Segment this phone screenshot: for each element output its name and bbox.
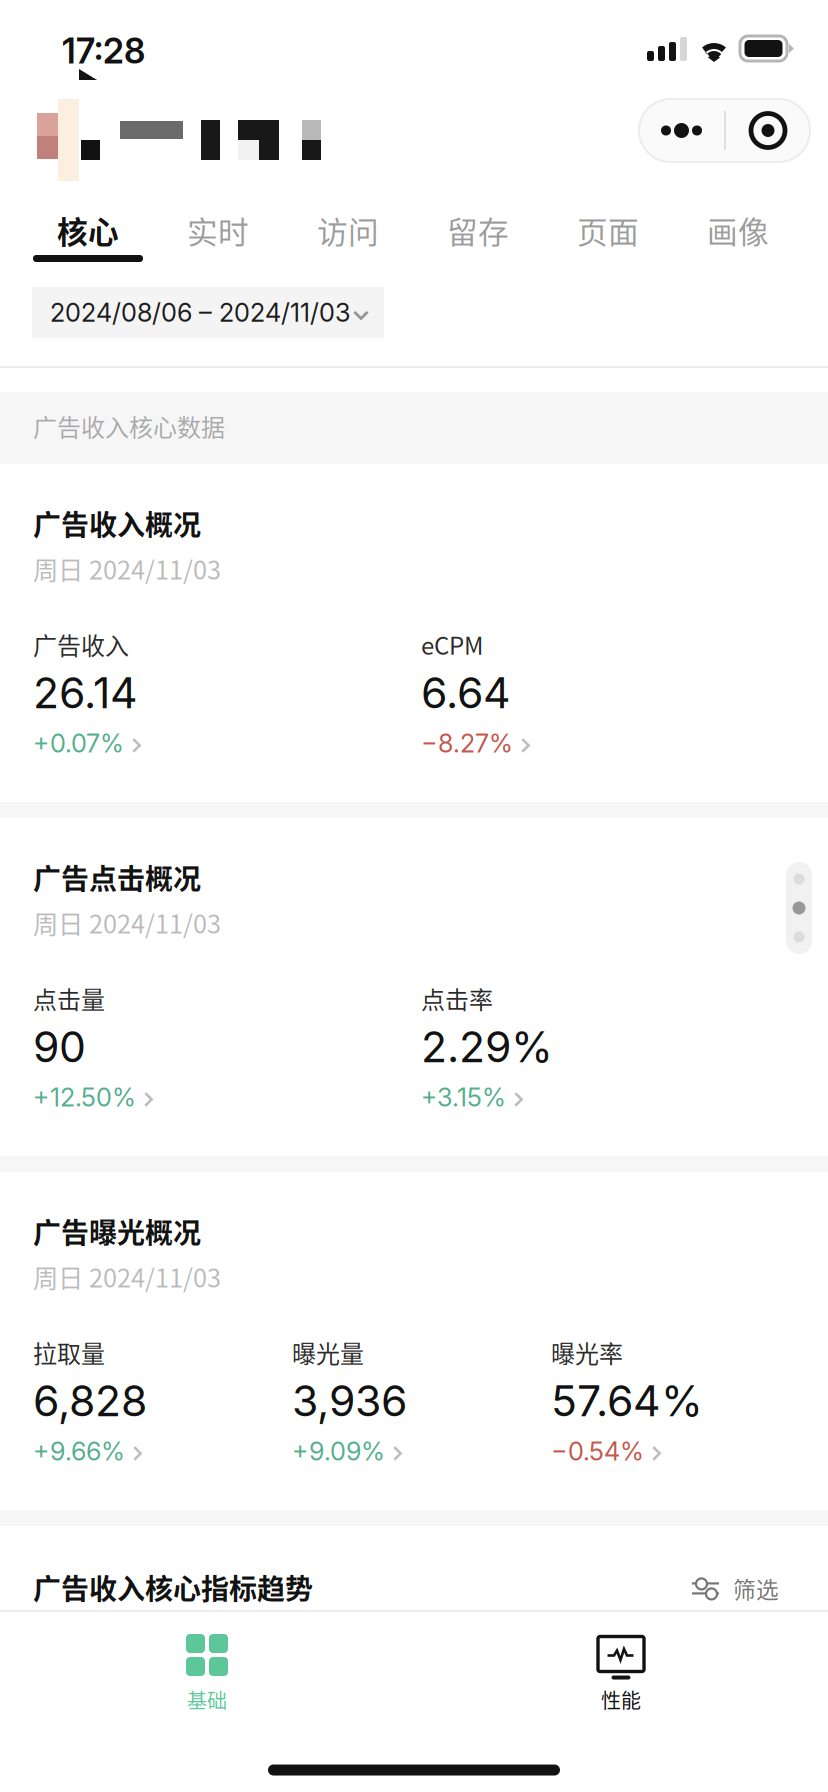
button[interactable]: eCPM — [421, 627, 809, 755]
button[interactable]: 页面 — [543, 188, 673, 278]
staticText: +9.66% — [33, 1436, 125, 1467]
staticText: 实时 — [187, 208, 249, 252]
staticText: 访问 — [317, 208, 379, 252]
staticText: +9.09% — [292, 1436, 385, 1467]
staticText: 点击率 — [421, 981, 493, 1016]
button[interactable]: 核心 — [23, 188, 153, 278]
staticText: −0.54% — [551, 1436, 644, 1467]
button[interactable]: 点击率 — [421, 981, 809, 1109]
staticText: 基础 — [187, 1685, 227, 1714]
button[interactable]: 拉取量 — [33, 1335, 292, 1463]
button[interactable]: 画像 — [673, 188, 803, 278]
staticText: 广告收入 — [33, 627, 129, 662]
staticText: 曝光量 — [292, 1335, 364, 1370]
staticText: 曝光率 — [551, 1335, 623, 1370]
button[interactable]: 基础 — [0, 1612, 414, 1736]
button[interactable]: 曝光量 — [292, 1335, 551, 1463]
button[interactable]: 点击量 — [33, 981, 421, 1109]
staticText: +0.07% — [33, 728, 124, 759]
staticText: 2024/08/06 – 2024/11/03 — [50, 297, 351, 328]
staticText: eCPM — [421, 627, 483, 662]
button[interactable]: 筛选 — [692, 1572, 779, 1605]
staticText: 拉取量 — [33, 1335, 105, 1370]
staticText: 6,828 — [33, 1375, 147, 1427]
staticText: 性能 — [601, 1685, 641, 1714]
button[interactable]: More options — [639, 99, 724, 162]
staticText: 点击量 — [33, 981, 105, 1016]
button[interactable]: 访问 — [283, 188, 413, 278]
button[interactable]: 广告收入 — [33, 627, 421, 755]
staticText: 广告曝光概况 — [33, 1211, 201, 1251]
staticText: 3,936 — [292, 1375, 407, 1427]
staticText: 17:28 — [62, 30, 145, 72]
staticText: 页面 — [577, 208, 639, 252]
staticText: 2.29% — [421, 1021, 553, 1073]
staticText: 筛选 — [733, 1572, 779, 1605]
staticText: 90 — [33, 1021, 86, 1073]
staticText: 周日 2024/11/03 — [33, 550, 221, 587]
button[interactable]: 实时 — [153, 188, 283, 278]
staticText: +3.15% — [421, 1082, 506, 1113]
staticText: 广告收入核心指标趋势 — [33, 1567, 313, 1607]
staticText: 画像 — [707, 208, 769, 252]
staticText: 广告点击概况 — [33, 857, 201, 897]
staticText: 26.14 — [33, 667, 138, 719]
button[interactable]: Close mini program — [726, 99, 810, 162]
staticText: 核心 — [57, 208, 119, 252]
staticText: 周日 2024/11/03 — [33, 1258, 221, 1295]
staticText: −8.27% — [421, 728, 513, 759]
button[interactable]: 性能 — [414, 1612, 828, 1736]
button[interactable]: 2024/08/06 – 2024/11/03 — [32, 287, 384, 338]
staticText: 广告收入核心数据 — [33, 409, 225, 443]
staticText: 广告收入概况 — [33, 503, 201, 543]
staticText: +12.50% — [33, 1082, 136, 1113]
staticText: 周日 2024/11/03 — [33, 904, 221, 941]
staticText: 57.64% — [551, 1375, 703, 1427]
staticText: 留存 — [447, 208, 509, 252]
button[interactable]: 留存 — [413, 188, 543, 278]
button[interactable]: 曝光率 — [551, 1335, 810, 1463]
staticText: 6.64 — [421, 667, 511, 719]
